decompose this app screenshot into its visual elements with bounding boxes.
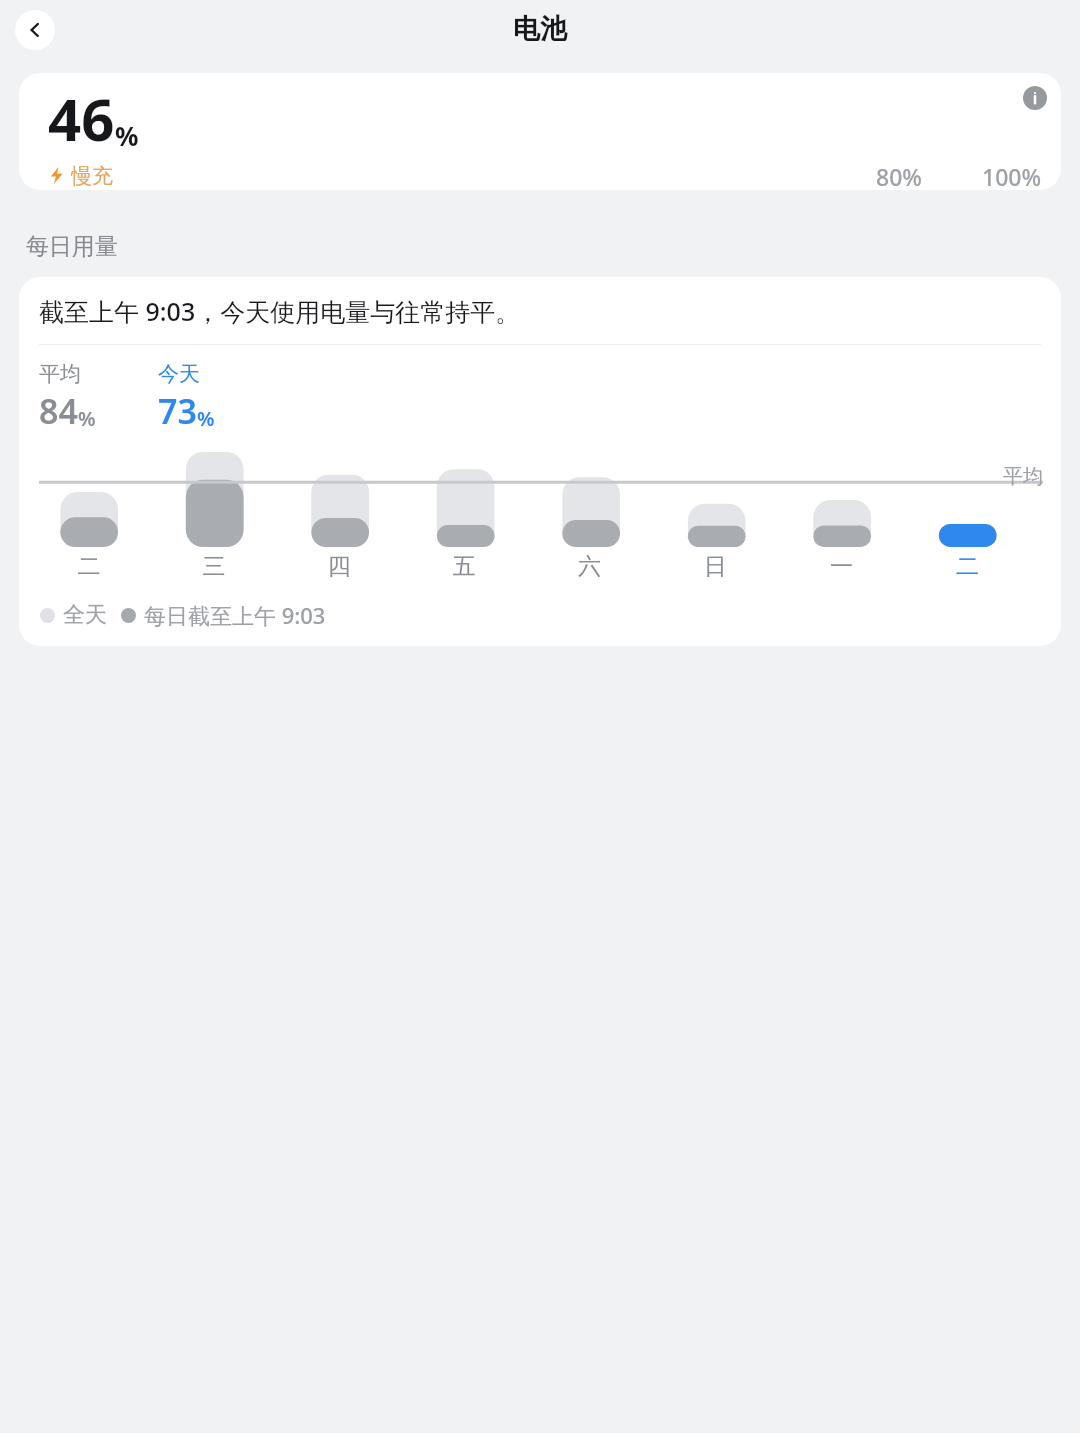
staticText: 四 [289,552,389,581]
staticText: 日 [665,552,766,581]
staticText: 截至上午 9:03，今天使用电量与往常持平。 [39,294,521,328]
staticText: % [78,405,96,432]
staticText: 一 [791,552,892,581]
staticText: 慢充 [71,163,113,189]
staticText: 84 [39,388,78,434]
staticText: 三 [164,552,264,581]
button[interactable]: 信息 [1023,86,1047,110]
staticText: 每日截至上午 9:03 [144,600,326,630]
button[interactable]: 返回 [15,10,55,50]
staticText: 80% [876,161,922,190]
staticText: 平均 [39,361,81,387]
button[interactable]: 截至上午 9:03，今天使用电量与往常持平。 [19,277,1061,646]
staticText: 73 [158,388,197,434]
staticText: 全天 [63,601,107,629]
staticText: % [197,405,215,432]
staticText: 今天 [158,361,200,387]
staticText: 100% [982,161,1042,190]
staticText: 二 [39,552,139,581]
staticText: 46 [48,79,115,158]
button[interactable]: 信息 [19,73,1061,190]
staticText: 平均 [1003,464,1043,489]
staticText: 五 [414,552,514,581]
staticText: % [115,118,139,153]
staticText: 电池 [513,12,567,46]
staticText: 二 [917,552,1018,581]
staticText: 每日用量 [26,232,118,261]
staticText: 六 [539,552,640,581]
